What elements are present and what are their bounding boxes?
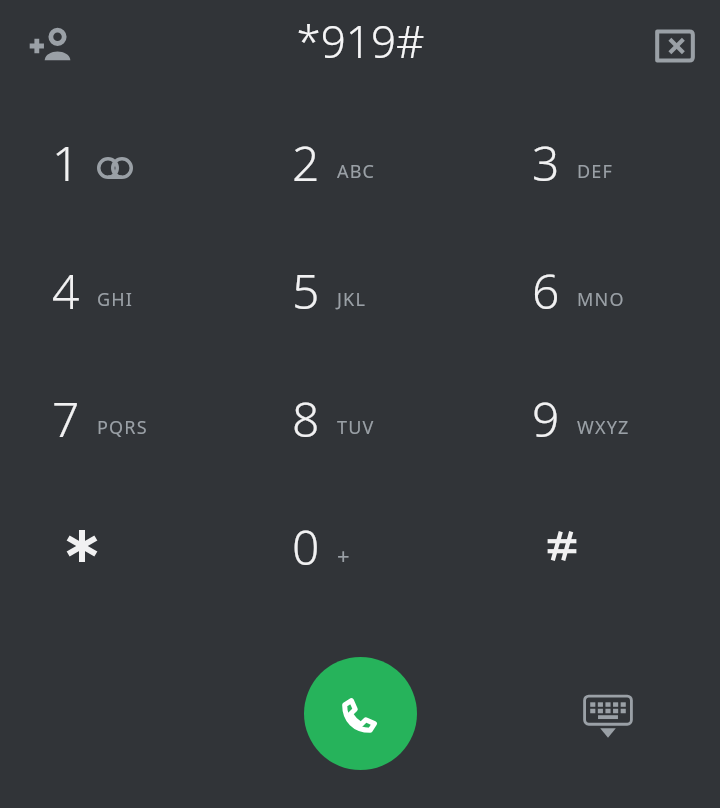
button[interactable]: 5 [240,226,480,354]
staticText: + [337,540,350,570]
staticText: 2 [292,130,320,195]
button[interactable]: Show keyboard [572,683,644,755]
staticText: 9 [532,386,560,451]
staticText: PQRS [97,415,148,440]
staticText: JKL [337,287,367,312]
staticText: 1 [52,130,80,195]
button[interactable]: Add contact [14,8,90,84]
button[interactable] [480,482,720,610]
staticText: *919# [296,11,425,71]
staticText: TUV [337,415,375,440]
button[interactable]: 1 [0,98,240,226]
staticText: MNO [577,287,625,312]
button[interactable]: Call [304,657,417,770]
staticText: 7 [52,386,80,451]
button[interactable]: 4 [0,226,240,354]
staticText: 8 [292,386,320,451]
button[interactable]: 8 [240,354,480,482]
button[interactable]: Backspace [630,8,706,84]
staticText: 5 [292,258,320,323]
button[interactable]: 7 [0,354,240,482]
staticText: DEF [577,159,614,184]
staticText: ABC [337,159,376,184]
button[interactable]: 9 [480,354,720,482]
staticText: 3 [532,130,560,195]
button[interactable]: 3 [480,98,720,226]
button[interactable] [0,482,240,610]
staticText: GHI [97,287,134,312]
staticText: 0 [292,514,320,579]
button[interactable]: 2 [240,98,480,226]
staticText: 6 [532,258,560,323]
staticText: 4 [52,258,80,323]
button[interactable]: 6 [480,226,720,354]
button[interactable]: 0 [240,482,480,610]
staticText: WXYZ [577,415,630,440]
